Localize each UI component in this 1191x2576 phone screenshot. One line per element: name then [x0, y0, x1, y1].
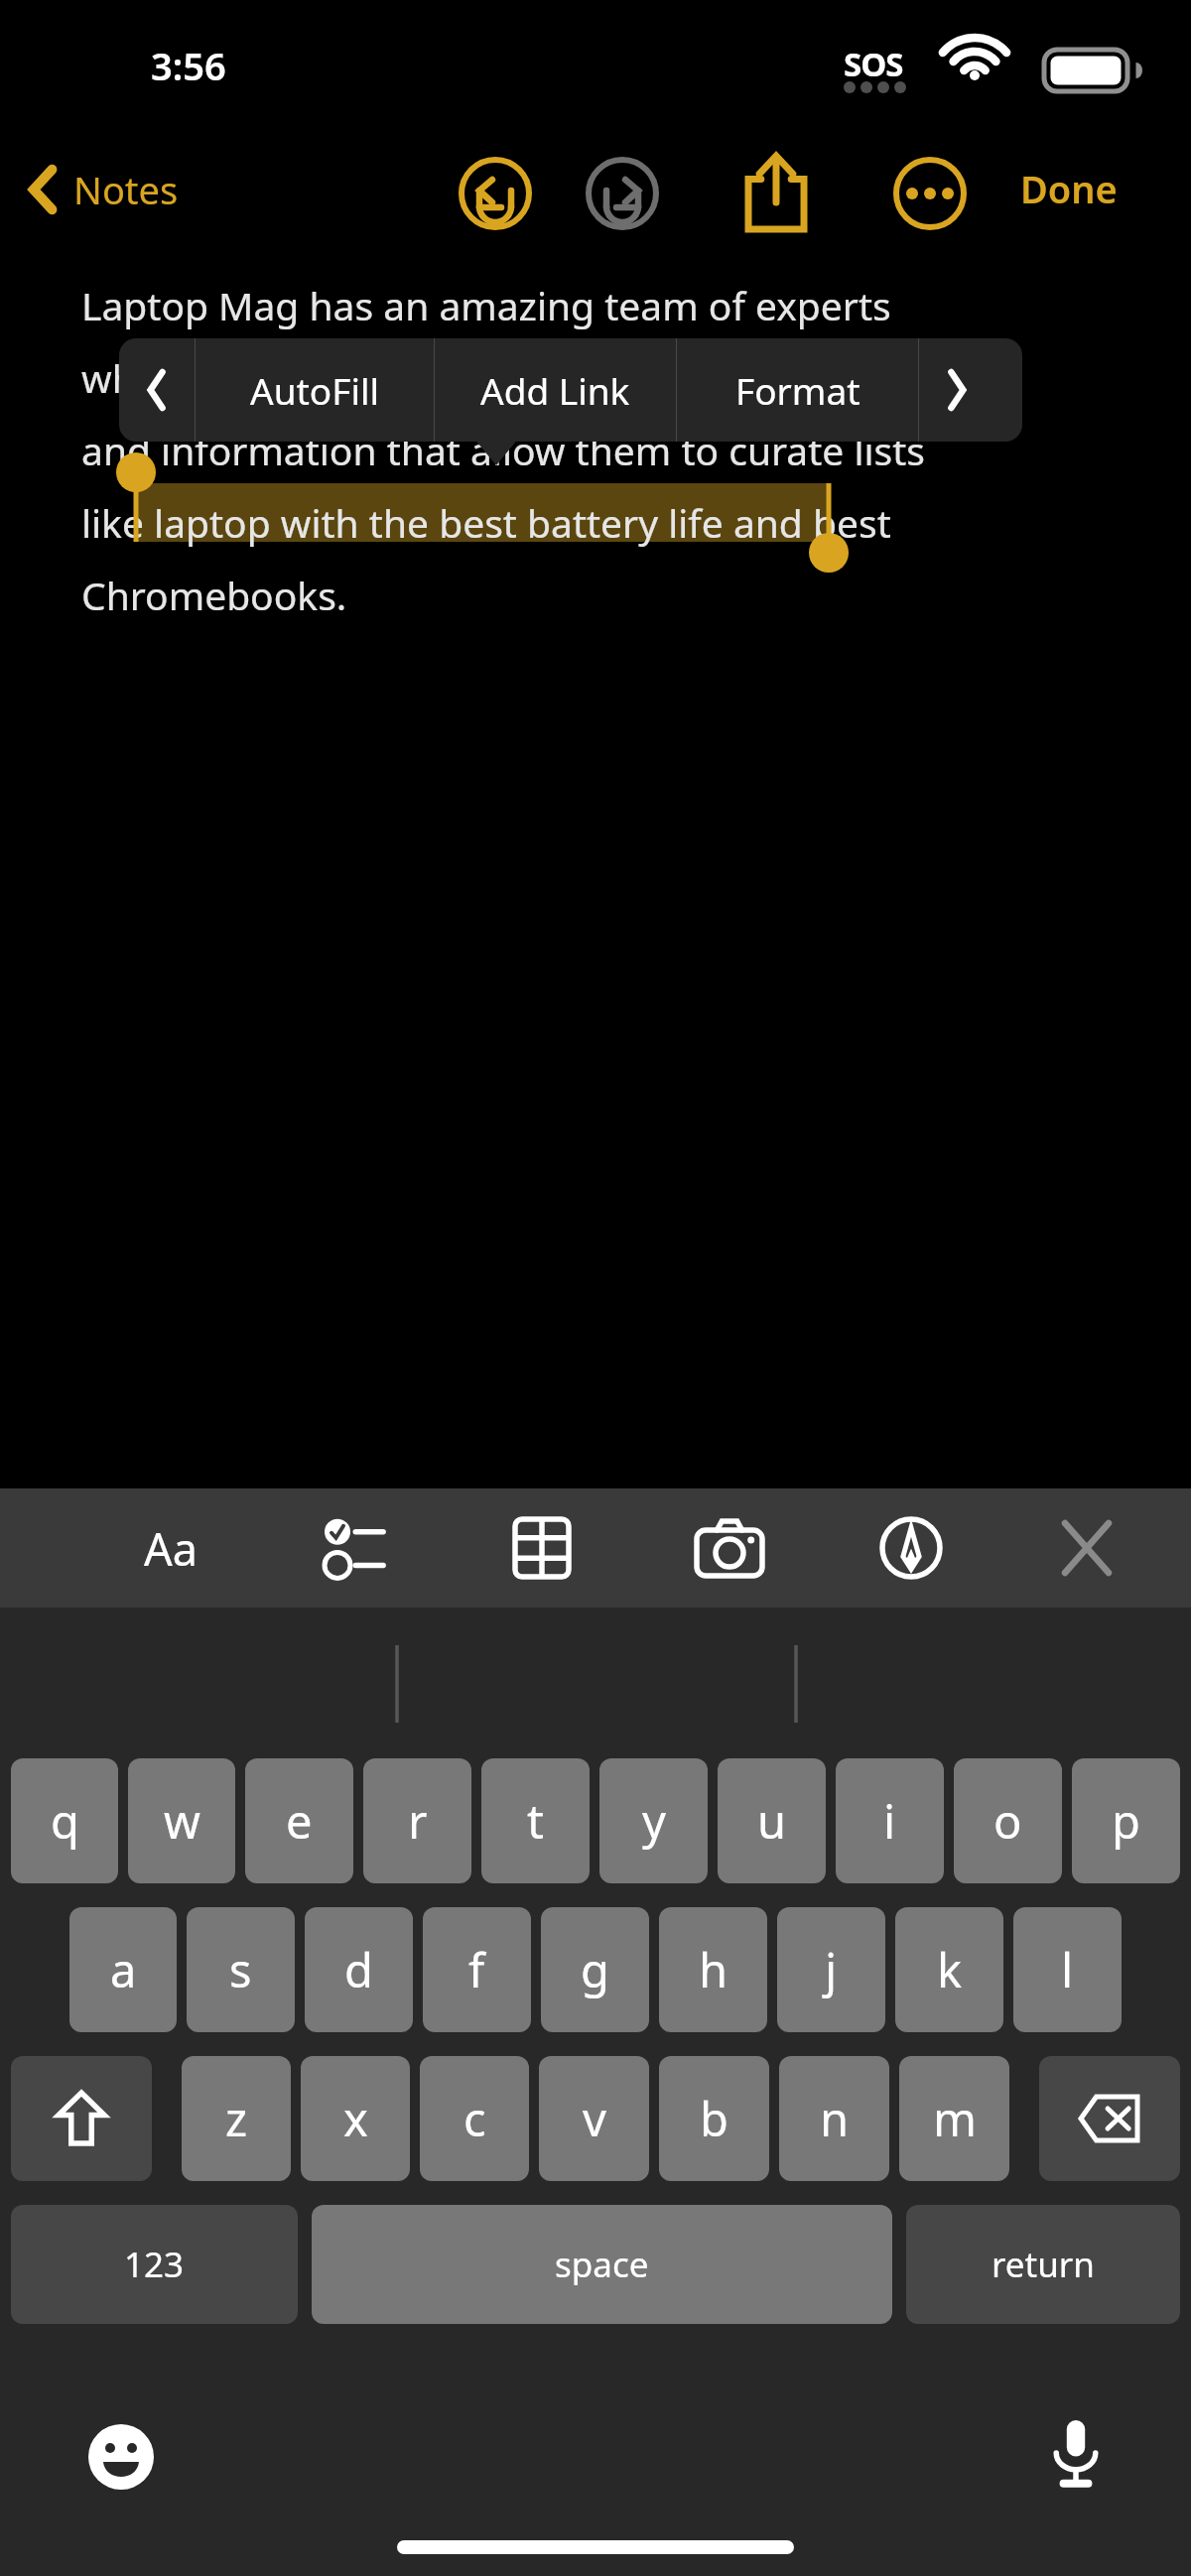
- staticText: return: [992, 2241, 1095, 2288]
- staticText: d: [344, 1938, 373, 2001]
- button[interactable]: More options: [892, 156, 968, 231]
- staticText: space: [555, 2241, 649, 2288]
- staticText: j: [825, 1938, 838, 2001]
- button[interactable]: z: [182, 2056, 291, 2181]
- staticText: x: [343, 2087, 368, 2150]
- button[interactable]: n: [779, 2056, 889, 2181]
- button[interactable]: k: [895, 1907, 1003, 2032]
- staticText: e: [286, 1789, 313, 1853]
- staticText: Aa: [144, 1518, 198, 1579]
- staticText: Done: [1020, 163, 1118, 214]
- button[interactable]: s: [187, 1907, 295, 2032]
- button[interactable]: e: [245, 1758, 353, 1883]
- staticText: Format: [735, 365, 860, 415]
- button[interactable]: b: [659, 2056, 769, 2181]
- staticText: t: [527, 1789, 544, 1853]
- staticText: who test thousands of laptops and benchm…: [81, 351, 947, 404]
- staticText: like laptop with the best battery life a…: [81, 496, 891, 549]
- staticText: v: [583, 2087, 606, 2150]
- staticText: p: [1112, 1789, 1140, 1853]
- button[interactable]: q: [11, 1758, 118, 1883]
- staticText: m: [933, 2087, 977, 2150]
- button[interactable]: p: [1072, 1758, 1180, 1883]
- staticText: z: [225, 2087, 248, 2150]
- staticText: n: [820, 2087, 850, 2150]
- staticText: o: [993, 1789, 1022, 1853]
- button[interactable]: return: [906, 2205, 1180, 2324]
- staticText: c: [463, 2087, 486, 2150]
- button[interactable]: Format: [677, 338, 918, 442]
- staticText: a: [110, 1938, 137, 2001]
- button[interactable]: Table: [494, 1506, 590, 1590]
- button[interactable]: r: [363, 1758, 471, 1883]
- button[interactable]: Add Link: [435, 338, 676, 442]
- button[interactable]: AutoFill: [196, 338, 434, 442]
- button[interactable]: u: [718, 1758, 826, 1883]
- button[interactable]: Dictation: [1038, 2415, 1114, 2491]
- button[interactable]: l: [1013, 1907, 1122, 2032]
- button[interactable]: j: [777, 1907, 885, 2032]
- button[interactable]: Close toolbar: [1039, 1506, 1134, 1590]
- staticText: Notes: [73, 164, 179, 215]
- button[interactable]: Checklist: [307, 1506, 402, 1590]
- staticText: s: [229, 1938, 252, 2001]
- button[interactable]: Camera: [682, 1506, 777, 1590]
- button[interactable]: g: [541, 1907, 649, 2032]
- staticText: f: [468, 1938, 485, 2001]
- button[interactable]: Notes: [22, 157, 187, 222]
- staticText: q: [51, 1789, 79, 1853]
- staticText: AutoFill: [250, 365, 380, 415]
- staticText: b: [700, 2087, 728, 2150]
- staticText: w: [164, 1789, 200, 1853]
- staticText: 123: [124, 2241, 185, 2288]
- button[interactable]: v: [539, 2056, 649, 2181]
- staticText: SOS: [844, 42, 903, 86]
- staticText: l: [1061, 1938, 1074, 2001]
- button[interactable]: space: [312, 2205, 892, 2324]
- button[interactable]: f: [423, 1907, 531, 2032]
- button[interactable]: Delete: [1039, 2056, 1180, 2181]
- staticText: and information that allow them to curat…: [81, 424, 926, 476]
- staticText: Chromebooks.: [81, 569, 347, 621]
- staticText: g: [581, 1938, 609, 2001]
- button[interactable]: Previous actions: [119, 338, 195, 442]
- staticText: y: [642, 1789, 666, 1853]
- button[interactable]: More actions: [919, 338, 994, 442]
- button[interactable]: 123: [11, 2205, 298, 2324]
- button[interactable]: c: [420, 2056, 529, 2181]
- button[interactable]: Emoji: [83, 2419, 159, 2495]
- button[interactable]: Done: [1010, 157, 1127, 220]
- button[interactable]: d: [305, 1907, 413, 2032]
- staticText: Add Link: [480, 365, 630, 415]
- button[interactable]: i: [836, 1758, 944, 1883]
- button[interactable]: Markup: [863, 1506, 959, 1590]
- button[interactable]: Aa: [123, 1506, 218, 1590]
- staticText: 3:56: [151, 40, 226, 91]
- button[interactable]: Redo: [585, 156, 660, 231]
- button[interactable]: t: [481, 1758, 590, 1883]
- button[interactable]: x: [301, 2056, 410, 2181]
- staticText: i: [883, 1789, 896, 1853]
- staticText: h: [699, 1938, 728, 2001]
- button[interactable]: a: [69, 1907, 177, 2032]
- staticText: k: [937, 1938, 963, 2001]
- staticText: u: [757, 1789, 787, 1853]
- button[interactable]: h: [659, 1907, 767, 2032]
- button[interactable]: Undo: [458, 156, 533, 231]
- staticText: r: [408, 1789, 428, 1853]
- button[interactable]: m: [899, 2056, 1009, 2181]
- button[interactable]: Shift: [11, 2056, 152, 2181]
- button[interactable]: o: [954, 1758, 1062, 1883]
- button[interactable]: w: [128, 1758, 235, 1883]
- staticText: Laptop Mag has an amazing team of expert…: [81, 279, 891, 331]
- button[interactable]: Share: [736, 149, 816, 238]
- button[interactable]: y: [599, 1758, 708, 1883]
